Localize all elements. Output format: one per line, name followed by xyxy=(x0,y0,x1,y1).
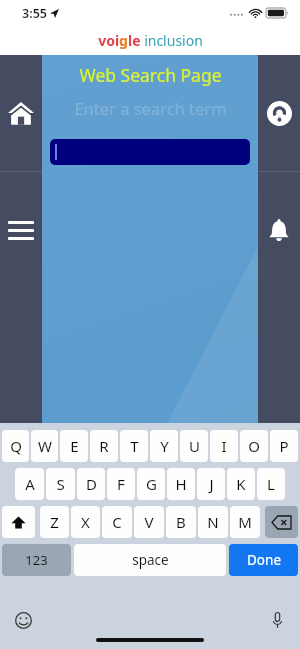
staticText: Done xyxy=(247,551,281,569)
staticText: C xyxy=(112,512,122,532)
button[interactable]: L xyxy=(257,468,285,500)
button[interactable]: Shift xyxy=(2,506,35,538)
staticText: F xyxy=(117,474,125,494)
button[interactable]: Backspace xyxy=(265,506,298,538)
staticText: O xyxy=(248,436,260,456)
button[interactable]: X xyxy=(71,506,100,538)
button[interactable]: Notifications xyxy=(258,210,300,252)
staticText: K xyxy=(236,474,246,494)
staticText: D xyxy=(86,474,97,494)
staticText: G xyxy=(146,474,157,494)
staticText: L xyxy=(267,474,275,494)
button[interactable]: Z xyxy=(40,506,69,538)
staticText: voigle inclusion xyxy=(98,31,203,50)
button[interactable]: V xyxy=(134,506,164,538)
button[interactable]: Done xyxy=(229,544,298,576)
staticText: U xyxy=(189,436,200,456)
button[interactable]: I xyxy=(210,430,238,462)
staticText: X xyxy=(81,512,90,532)
staticText: P xyxy=(279,436,289,456)
button[interactable]: J xyxy=(197,468,225,500)
button[interactable]: M xyxy=(230,506,260,538)
button[interactable]: Y xyxy=(150,430,178,462)
staticText: Enter a search term xyxy=(74,97,227,119)
button[interactable]: Home xyxy=(0,92,42,134)
button[interactable]: Dictate xyxy=(266,609,288,631)
staticText: M xyxy=(238,512,252,532)
staticText: 123 xyxy=(25,551,48,569)
staticText: E xyxy=(70,436,79,456)
button[interactable]: E xyxy=(60,430,88,462)
staticText: H xyxy=(175,474,187,494)
staticText: N xyxy=(207,512,219,532)
button[interactable]: B xyxy=(166,506,196,538)
staticText: 3:55 xyxy=(22,5,47,22)
staticText: R xyxy=(99,436,109,456)
staticText: B xyxy=(176,512,186,532)
staticText: Z xyxy=(50,512,59,532)
button[interactable]: O xyxy=(240,430,268,462)
staticText: I xyxy=(221,436,227,456)
button[interactable]: G xyxy=(137,468,165,500)
staticText: space xyxy=(132,551,169,569)
button[interactable]: N xyxy=(198,506,228,538)
button[interactable]: T xyxy=(120,430,148,462)
button[interactable]: C xyxy=(102,506,132,538)
staticText: A xyxy=(25,474,35,494)
staticText: V xyxy=(144,512,154,532)
staticText: J xyxy=(209,474,214,494)
button[interactable]: Emoji xyxy=(12,609,34,631)
staticText: T xyxy=(130,436,139,456)
button[interactable]: D xyxy=(77,468,105,500)
button[interactable]: F xyxy=(107,468,135,500)
button[interactable]: R xyxy=(90,430,118,462)
button[interactable]: Menu xyxy=(0,210,42,252)
button[interactable]: P xyxy=(270,430,298,462)
staticText: Q xyxy=(10,436,22,456)
staticText: Y xyxy=(160,436,169,456)
button[interactable]: W xyxy=(31,430,58,462)
button[interactable]: 123 xyxy=(2,544,71,576)
button[interactable]: Help xyxy=(258,92,300,134)
button[interactable]: U xyxy=(180,430,208,462)
button[interactable]: H xyxy=(167,468,195,500)
staticText: S xyxy=(56,474,65,494)
button[interactable]: Q xyxy=(2,430,29,462)
button[interactable]: space xyxy=(74,544,226,576)
staticText: Web Search Page xyxy=(79,63,222,87)
staticText: W xyxy=(38,436,52,456)
button[interactable]: A xyxy=(15,468,44,500)
button[interactable]: K xyxy=(227,468,255,500)
button[interactable]: S xyxy=(46,468,75,500)
button[interactable] xyxy=(50,139,250,165)
